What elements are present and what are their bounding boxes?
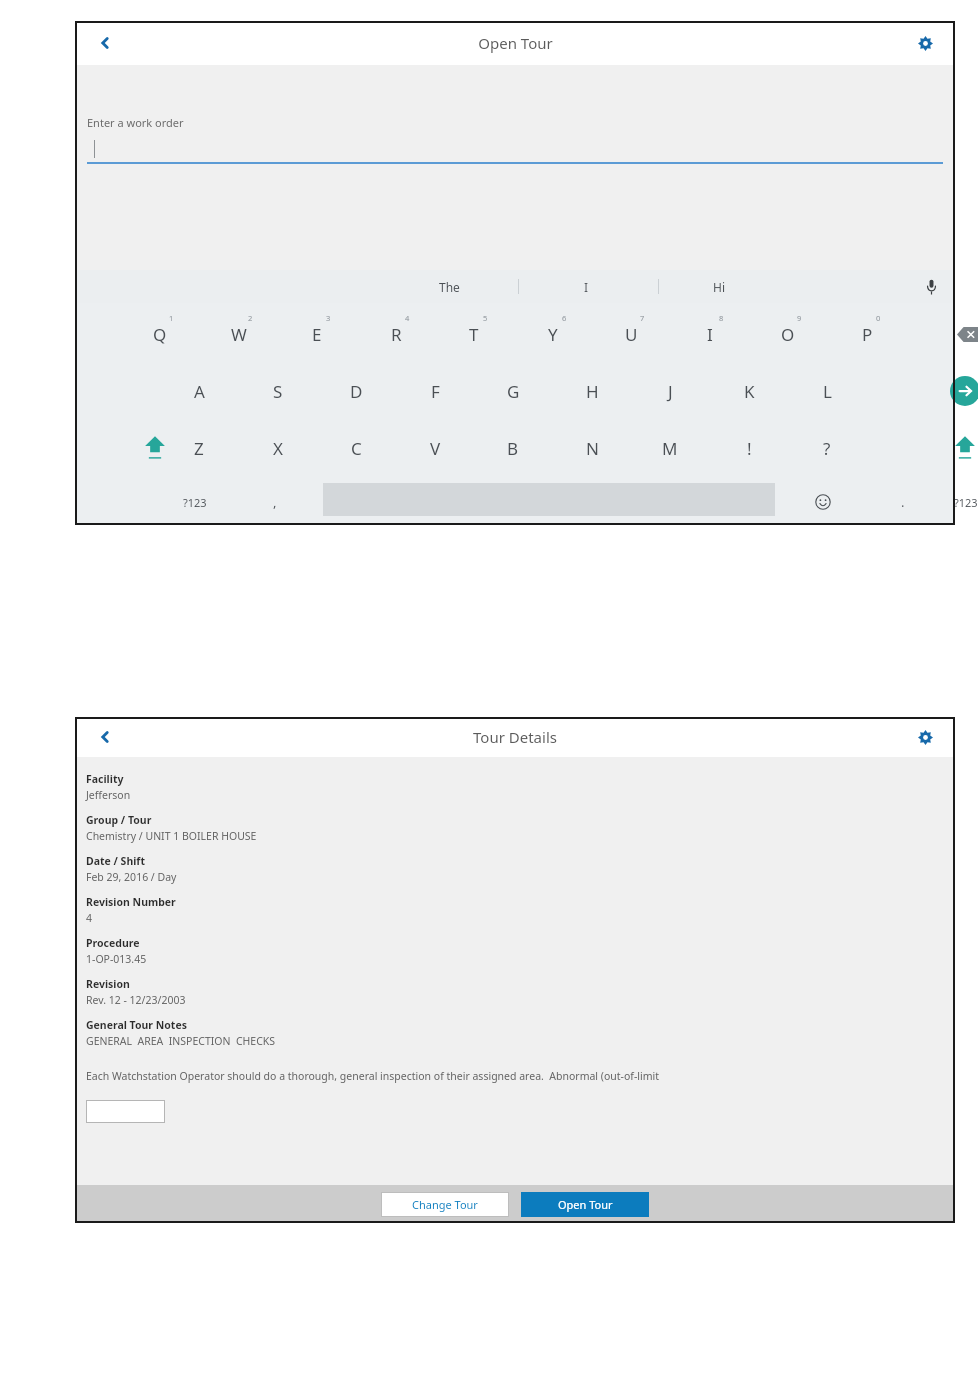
button[interactable]: R [362, 306, 430, 362]
button[interactable]: W [205, 306, 273, 362]
staticText: L [823, 380, 832, 403]
staticText: 5 [483, 313, 488, 323]
staticText: K [744, 380, 755, 403]
button[interactable]: U [597, 306, 665, 362]
button[interactable] [86, 1100, 165, 1123]
staticText: W [231, 323, 247, 346]
staticText: P [862, 323, 873, 346]
button[interactable]: T [440, 306, 508, 362]
button[interactable]: B [479, 420, 547, 476]
staticText: Revision [86, 977, 130, 991]
staticText: D [350, 380, 363, 403]
button[interactable]: S [244, 363, 312, 419]
button[interactable]: Enter [931, 363, 978, 419]
staticText: 6 [562, 313, 567, 323]
staticText: ! [747, 437, 752, 460]
button[interactable]: , [245, 476, 305, 528]
staticText: O [781, 323, 795, 346]
button[interactable]: A [165, 363, 233, 419]
staticText: C [351, 437, 362, 460]
button[interactable]: ! [715, 420, 783, 476]
button[interactable]: Change Tour [381, 1192, 509, 1217]
button[interactable]: L [793, 363, 861, 419]
staticText: Feb 29, 2016 / Day [86, 870, 177, 884]
button[interactable]: ?123 [933, 476, 978, 528]
button[interactable]: Settings [909, 721, 941, 753]
button[interactable]: . [873, 476, 933, 528]
button[interactable]: N [558, 420, 626, 476]
staticText: B [507, 437, 519, 460]
button[interactable]: H [558, 363, 626, 419]
button[interactable]: Back [89, 27, 121, 59]
staticText: Rev. 12 - 12/23/2003 [86, 993, 186, 1007]
button[interactable]: Shift [121, 420, 189, 476]
staticText: M [662, 437, 678, 460]
button[interactable]: I [676, 306, 744, 362]
button[interactable]: The [439, 279, 460, 295]
staticText: J [668, 380, 673, 403]
staticText: Revision Number [86, 895, 176, 909]
staticText: Enter a work order [87, 115, 184, 130]
button[interactable]: C [322, 420, 390, 476]
button[interactable]: K [715, 363, 783, 419]
button[interactable]: V [401, 420, 469, 476]
button[interactable]: G [479, 363, 547, 419]
staticText: Y [548, 323, 558, 346]
staticText: Open Tour [558, 1197, 613, 1212]
button[interactable]: F [401, 363, 469, 419]
button[interactable]: E [283, 306, 351, 362]
staticText: F [431, 380, 440, 403]
button[interactable]: Hi [713, 279, 725, 295]
button[interactable]: P [833, 306, 901, 362]
staticText: 4 [86, 911, 93, 925]
button[interactable]: X [244, 420, 312, 476]
staticText: Jefferson [86, 788, 131, 802]
button[interactable]: Shift [931, 420, 978, 476]
staticText: . [901, 493, 905, 511]
staticText: I [707, 323, 713, 346]
staticText: ?123 [954, 495, 978, 510]
button[interactable]: Emoji [793, 476, 853, 528]
staticText: 1-OP-013.45 [86, 952, 147, 966]
staticText: Facility [86, 772, 124, 786]
button[interactable]: Backspace [937, 306, 978, 362]
staticText: Tour Details [473, 727, 557, 747]
staticText: 3 [326, 313, 331, 323]
staticText: 8 [719, 313, 724, 323]
button[interactable]: M [636, 420, 704, 476]
button[interactable]: Q [126, 306, 194, 362]
staticText: T [469, 323, 479, 346]
staticText: 2 [248, 313, 253, 323]
staticText: 4 [405, 313, 410, 323]
staticText: Date / Shift [86, 854, 145, 868]
staticText: S [273, 380, 283, 403]
staticText: General Tour Notes [86, 1018, 187, 1032]
button[interactable]: Voice input [919, 275, 943, 299]
staticText: ?123 [183, 495, 207, 510]
staticText: 9 [797, 313, 802, 323]
button[interactable]: Open Tour [521, 1192, 649, 1217]
button[interactable]: Y [519, 306, 587, 362]
staticText: 0 [876, 313, 881, 323]
staticText: 7 [640, 313, 645, 323]
staticText: G [507, 380, 520, 403]
staticText: U [625, 323, 638, 346]
button[interactable]: ? [793, 420, 861, 476]
staticText: 1 [169, 313, 174, 323]
button[interactable]: Settings [909, 27, 941, 59]
staticText: , [273, 493, 277, 511]
staticText: V [430, 437, 441, 460]
button[interactable]: D [322, 363, 390, 419]
button[interactable]: O [754, 306, 822, 362]
staticText: ? [823, 437, 831, 460]
button[interactable]: Back [89, 721, 121, 753]
button[interactable]: Z [165, 420, 233, 476]
button[interactable]: I [584, 279, 589, 295]
staticText: E [312, 323, 322, 346]
staticText: Z [194, 437, 204, 460]
button[interactable]: ?123 [160, 476, 230, 528]
staticText: Each Watchstation Operator should do a t… [86, 1069, 660, 1083]
staticText: R [391, 323, 402, 346]
button[interactable]: J [636, 363, 704, 419]
